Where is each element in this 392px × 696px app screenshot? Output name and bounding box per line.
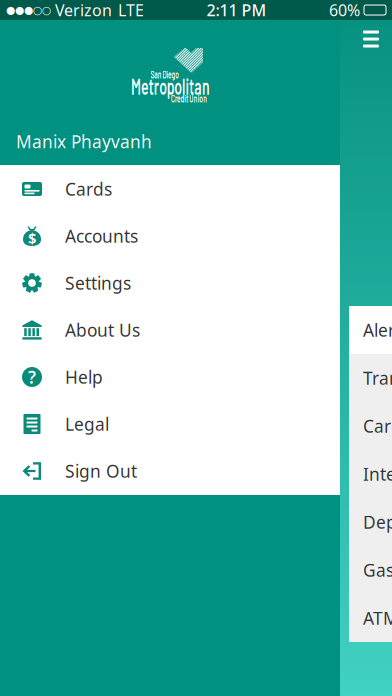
staticText: Help xyxy=(65,365,103,388)
button[interactable]: Gas xyxy=(349,546,392,594)
button[interactable]: Alerts xyxy=(349,306,392,354)
button[interactable]: ? xyxy=(0,353,340,400)
staticText: Deposit xyxy=(363,510,392,533)
staticText: Verizon xyxy=(55,0,112,21)
staticText: 2:11 PM xyxy=(206,0,266,21)
staticText: Gas xyxy=(363,558,392,581)
staticText: Transfers xyxy=(363,366,392,389)
staticText: Cards xyxy=(363,414,392,437)
staticText: ? xyxy=(28,365,36,388)
button[interactable]: Cards xyxy=(349,402,392,450)
staticText: Accounts xyxy=(65,224,138,247)
staticText: Legal xyxy=(65,412,109,435)
staticText: LTE xyxy=(118,0,144,21)
button[interactable]: ATM xyxy=(349,594,392,642)
staticText: ●●●○○ xyxy=(6,4,51,16)
staticText: Alerts xyxy=(363,318,392,341)
staticText: Manix Phayvanh xyxy=(16,130,152,153)
button[interactable]: Deposit xyxy=(349,498,392,546)
button[interactable]: Internet xyxy=(349,450,392,498)
staticText: Sign Out xyxy=(65,459,137,482)
button[interactable]: Sign Out xyxy=(0,447,340,494)
staticText: 60% xyxy=(329,0,360,21)
button[interactable]: Transfers xyxy=(349,354,392,402)
button[interactable]: Settings xyxy=(0,259,340,306)
staticText: Settings xyxy=(65,271,131,294)
staticText: San Diego xyxy=(150,68,202,82)
staticText: Internet xyxy=(363,462,392,485)
button[interactable]: Menu xyxy=(351,19,391,59)
staticText: $ xyxy=(28,228,36,248)
staticText: Credit Union xyxy=(171,92,236,106)
button[interactable]: About Us xyxy=(0,306,340,353)
staticText: ATM xyxy=(363,606,392,629)
staticText: About Us xyxy=(65,318,140,341)
button[interactable]: Cards xyxy=(0,165,340,212)
button[interactable]: Legal xyxy=(0,400,340,447)
button[interactable]: $ xyxy=(0,212,340,259)
staticText: Metropolitan xyxy=(131,72,265,101)
staticText: Cards xyxy=(65,177,112,200)
